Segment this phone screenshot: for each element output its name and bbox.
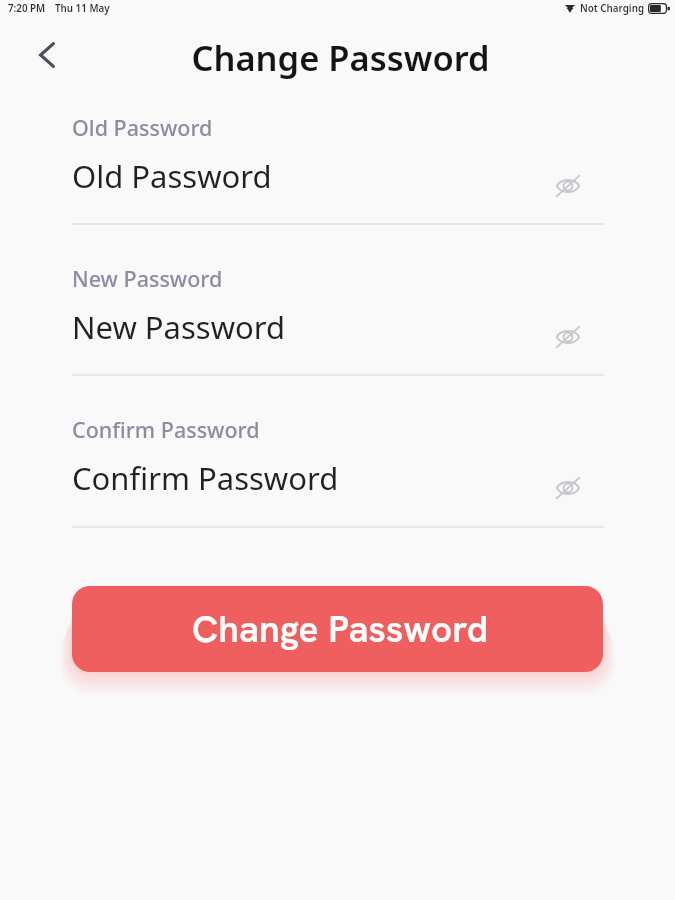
staticText: Confirm Password	[72, 457, 339, 499]
button[interactable]: Toggle Old Password visibility	[546, 164, 590, 208]
staticText: New Password	[72, 264, 223, 293]
button[interactable]: Toggle New Password visibility	[546, 315, 590, 359]
staticText: Thu 11 May	[55, 2, 110, 15]
staticText: Confirm Password	[72, 415, 260, 444]
staticText: Old Password	[72, 155, 272, 197]
button[interactable]: Change Password	[72, 586, 603, 672]
staticText: 7:20 PM	[8, 2, 46, 15]
staticText: Not Charging	[580, 2, 645, 15]
button[interactable]: Back	[25, 33, 69, 77]
staticText: Change Password	[191, 34, 490, 81]
staticText: New Password	[72, 306, 286, 348]
staticText: Old Password	[72, 113, 213, 142]
staticText: Change Password	[192, 605, 489, 653]
button[interactable]: Toggle Confirm Password visibility	[546, 466, 590, 510]
